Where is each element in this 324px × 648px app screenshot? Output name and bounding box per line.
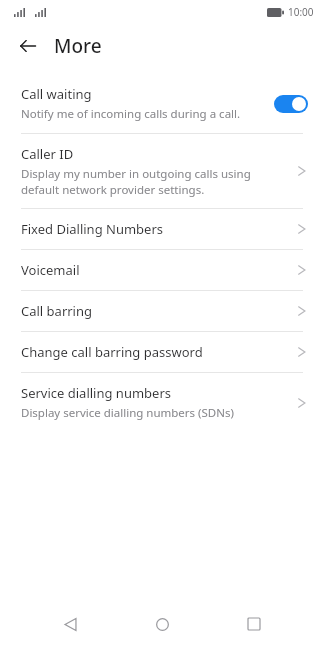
staticText: Display my number in outgoing calls usin…: [21, 166, 251, 197]
button[interactable]: Fixed Dialling Numbers: [0, 209, 324, 249]
button[interactable]: Call waiting toggle: [274, 95, 308, 113]
button[interactable]: Voicemail: [0, 250, 324, 290]
button[interactable]: Change call barring password: [0, 332, 324, 372]
button[interactable]: Call barring: [0, 291, 324, 331]
staticText: Call barring: [21, 302, 93, 320]
staticText: Service dialling numbers: [21, 384, 172, 402]
staticText: 10:00: [288, 5, 314, 19]
button[interactable]: Back: [12, 30, 44, 62]
button[interactable]: Recents: [232, 602, 276, 646]
staticText: More: [54, 33, 102, 59]
staticText: Notify me of incoming calls during a cal…: [21, 106, 241, 122]
staticText: Caller ID: [21, 145, 74, 163]
button[interactable]: Service dialling numbers: [0, 373, 324, 432]
button[interactable]: Caller ID: [0, 134, 324, 208]
staticText: Display service dialling numbers (SDNs): [21, 405, 234, 421]
staticText: Fixed Dialling Numbers: [21, 220, 164, 238]
staticText: Call waiting: [21, 85, 92, 103]
staticText: Change call barring password: [21, 343, 203, 361]
button[interactable]: Call waiting: [0, 74, 324, 133]
button[interactable]: Home: [140, 602, 184, 646]
button[interactable]: Back: [48, 602, 92, 646]
staticText: Voicemail: [21, 261, 80, 279]
